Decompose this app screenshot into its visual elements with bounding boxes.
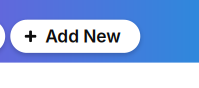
staticText: Add New xyxy=(45,26,121,47)
button[interactable]: Add New xyxy=(10,20,140,53)
